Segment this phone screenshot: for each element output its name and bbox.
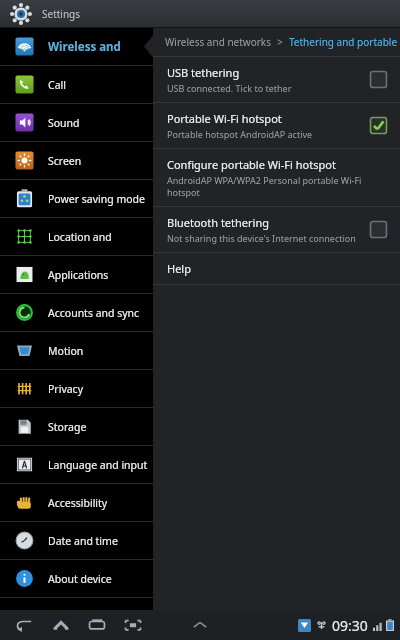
staticText: Accessibility xyxy=(48,496,108,510)
staticText: Bluetooth tethering xyxy=(167,215,269,230)
staticText: Accounts and sync xyxy=(48,306,140,320)
button[interactable]: Applications xyxy=(0,256,153,293)
staticText: Location and security xyxy=(48,230,153,244)
staticText: 09:30 xyxy=(332,616,368,635)
staticText: Call xyxy=(48,78,66,92)
button[interactable]: About device xyxy=(0,560,153,597)
staticText: Help xyxy=(167,261,191,276)
staticText: Wireless and networks xyxy=(165,35,271,49)
button[interactable]: Wireless and networks xyxy=(0,28,153,65)
button[interactable]: Portable Wi-Fi hotspot checkbox xyxy=(369,116,388,135)
staticText: Screen xyxy=(48,154,82,168)
staticText: USB tethering xyxy=(167,65,240,80)
button[interactable]: Language and input xyxy=(0,446,153,483)
button[interactable]: Storage xyxy=(0,408,153,445)
button[interactable]: Privacy xyxy=(0,370,153,407)
button[interactable]: Motion xyxy=(0,332,153,369)
staticText: Sound xyxy=(48,116,80,130)
staticText: Date and time xyxy=(48,534,118,548)
staticText: AndroidAP WPA/WPA2 Personal portable Wi-… xyxy=(167,174,388,198)
button[interactable]: Recent apps xyxy=(86,614,108,636)
button[interactable]: Home xyxy=(50,614,72,636)
button[interactable]: USB tethering xyxy=(153,57,400,102)
button[interactable]: Accounts and sync xyxy=(0,294,153,331)
other: Settings icon xyxy=(10,3,32,25)
staticText: Portable hotspot AndroidAP active xyxy=(167,128,313,140)
staticText: About device xyxy=(48,572,112,586)
staticText: Wireless and networks xyxy=(48,39,153,55)
button[interactable]: Portable Wi-Fi hotspot xyxy=(153,103,400,148)
staticText: Tethering and portable hotspot xyxy=(289,35,400,49)
button[interactable]: Expand xyxy=(189,614,211,636)
button[interactable]: Screen xyxy=(0,142,153,179)
button[interactable]: Help xyxy=(153,253,400,284)
staticText: Configure portable Wi-Fi hotspot xyxy=(167,157,336,172)
button[interactable]: Location and security xyxy=(0,218,153,255)
staticText: Motion xyxy=(48,344,84,358)
button[interactable]: Back xyxy=(14,614,36,636)
staticText: Not sharing this device's Internet conne… xyxy=(167,232,356,244)
staticText: Privacy xyxy=(48,382,84,396)
button[interactable]: USB tethering checkbox xyxy=(369,70,388,89)
button[interactable]: Bluetooth tethering xyxy=(153,207,400,252)
staticText: Language and input xyxy=(48,458,148,472)
button[interactable]: Screenshot xyxy=(122,614,144,636)
button[interactable]: Sound xyxy=(0,104,153,141)
button[interactable]: Bluetooth tethering checkbox xyxy=(369,220,388,239)
button[interactable]: Accessibility xyxy=(0,484,153,521)
staticText: Power saving mode xyxy=(48,192,145,206)
staticText: Settings xyxy=(42,7,81,21)
staticText: > xyxy=(277,35,283,49)
button[interactable]: Power saving mode xyxy=(0,180,153,217)
staticText: Applications xyxy=(48,268,109,282)
button[interactable]: Date and time xyxy=(0,522,153,559)
button[interactable]: Call xyxy=(0,66,153,103)
staticText: USB connected. Tick to tether xyxy=(167,82,292,94)
staticText: Portable Wi-Fi hotspot xyxy=(167,111,282,126)
staticText: Storage xyxy=(48,420,87,434)
button[interactable]: Configure portable Wi-Fi hotspot xyxy=(153,149,400,206)
